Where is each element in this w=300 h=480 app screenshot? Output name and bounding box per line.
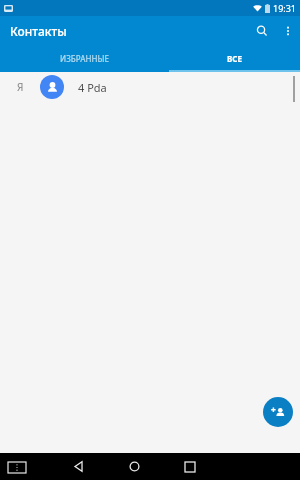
button[interactable]: Я [0, 72, 300, 102]
staticText: Контакты [10, 23, 67, 39]
button[interactable]: More options [276, 19, 300, 43]
button[interactable]: Split screen [4, 459, 30, 475]
button[interactable]: Home [111, 453, 157, 480]
button[interactable]: Search [248, 17, 276, 45]
staticText: ИЗБРАННЫЕ [60, 53, 109, 64]
button[interactable]: ВСЕ [169, 45, 300, 72]
button[interactable]: Add contact [263, 397, 293, 427]
staticText: 19:31 [273, 2, 297, 14]
staticText: Я [17, 80, 24, 94]
staticText: ВСЕ [227, 53, 242, 64]
staticText: 4 Pda [78, 80, 107, 95]
button[interactable]: Back [55, 453, 101, 480]
button[interactable]: Recent apps [167, 453, 213, 480]
button[interactable]: ИЗБРАННЫЕ [0, 45, 169, 72]
